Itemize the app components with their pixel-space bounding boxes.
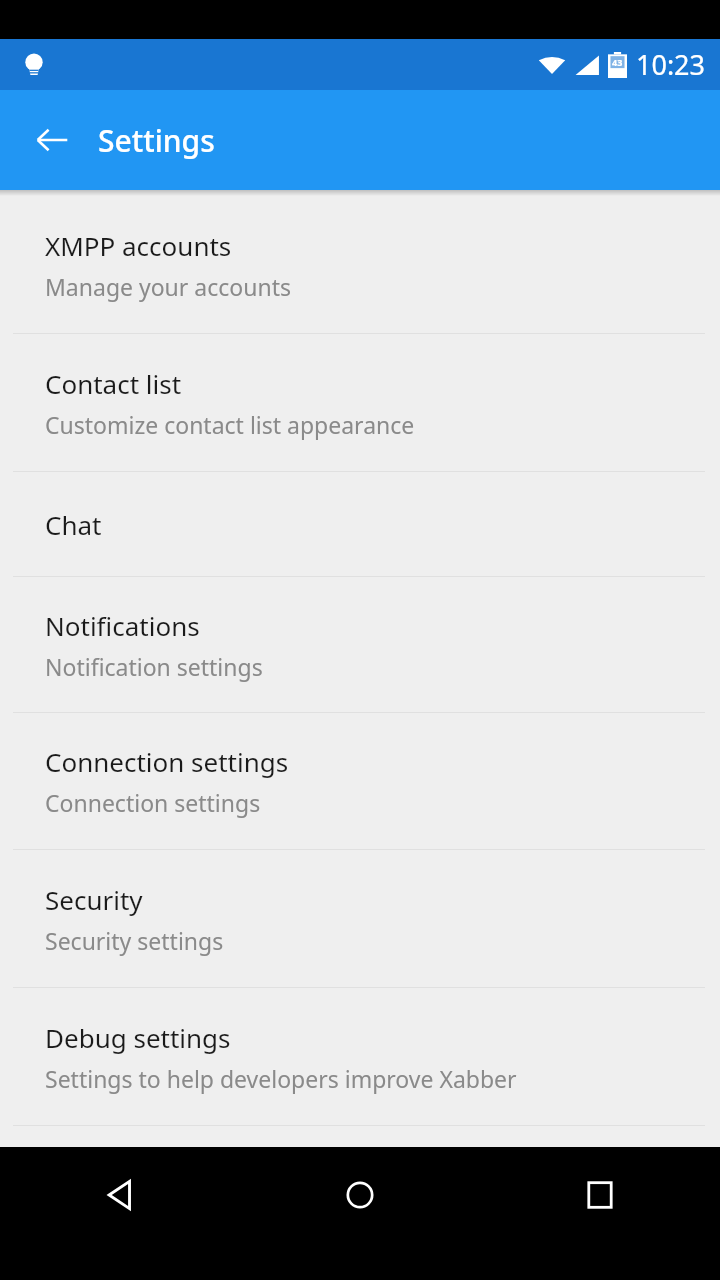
- button[interactable]: Back: [22, 110, 82, 170]
- staticText: Connection settings: [45, 787, 261, 818]
- button[interactable]: Debug settings: [0, 988, 720, 1125]
- staticText: 10:23: [636, 46, 706, 83]
- button[interactable]: Home: [240, 1147, 480, 1243]
- button[interactable]: Security: [0, 850, 720, 987]
- button[interactable]: Chat: [0, 472, 720, 576]
- staticText: Connection settings: [45, 744, 289, 779]
- staticText: Chat: [45, 507, 102, 542]
- button[interactable]: Recent apps: [480, 1147, 720, 1243]
- button[interactable]: Contact list: [0, 334, 720, 471]
- staticText: XMPP accounts: [45, 228, 232, 263]
- staticText: 43: [612, 56, 623, 68]
- button[interactable]: XMPP accounts: [0, 196, 720, 333]
- staticText: Settings: [98, 120, 215, 161]
- staticText: Notification settings: [45, 651, 263, 682]
- staticText: Manage your accounts: [45, 271, 291, 302]
- staticText: Security settings: [45, 925, 224, 956]
- button[interactable]: Notifications: [0, 577, 720, 712]
- button[interactable]: Connection settings: [0, 713, 720, 849]
- staticText: Notifications: [45, 608, 200, 643]
- button[interactable]: Back: [0, 1147, 240, 1243]
- staticText: Customize contact list appearance: [45, 409, 415, 440]
- staticText: Settings to help developers improve Xabb…: [45, 1063, 517, 1094]
- staticText: Debug settings: [45, 1020, 231, 1055]
- staticText: Contact list: [45, 366, 182, 401]
- staticText: Security: [45, 882, 143, 917]
